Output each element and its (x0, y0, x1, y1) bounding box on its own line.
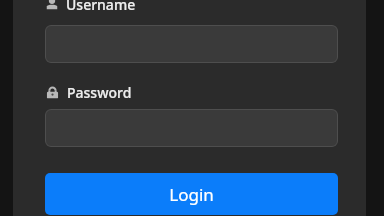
button[interactable]: Password input field (45, 109, 338, 147)
staticText: Login (169, 183, 214, 206)
staticText: Password (67, 83, 132, 101)
button[interactable]: Username input field (45, 25, 338, 63)
button[interactable]: Login (45, 173, 338, 215)
staticText: Username (66, 0, 136, 13)
